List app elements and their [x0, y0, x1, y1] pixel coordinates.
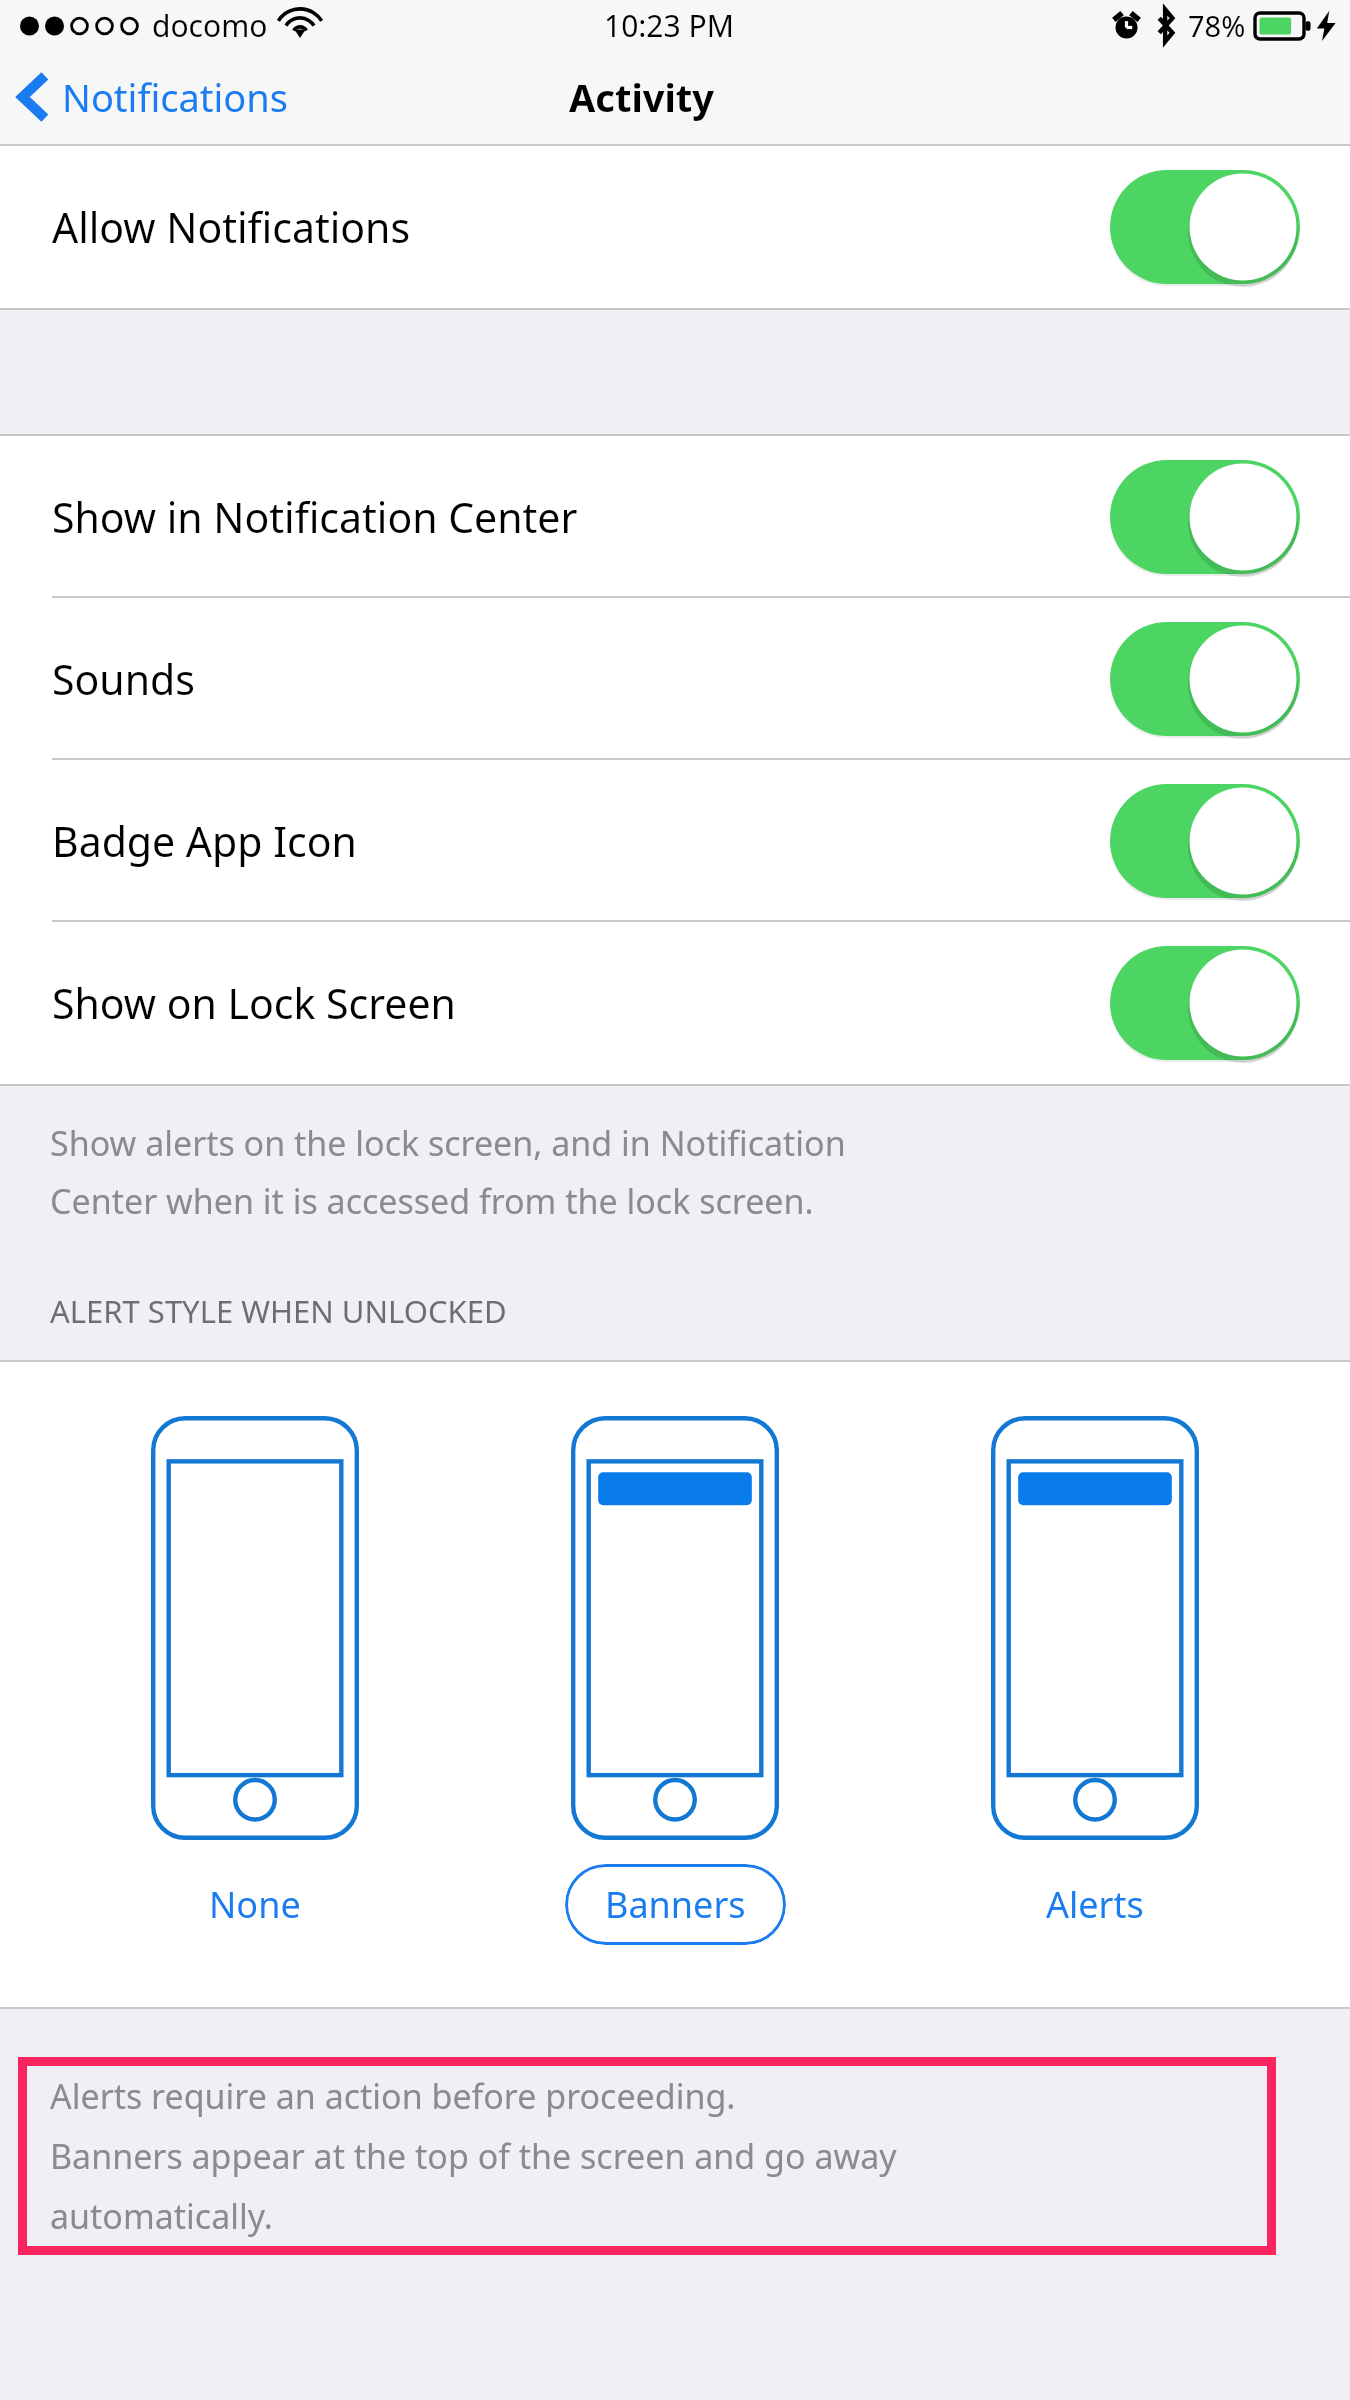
other: Allow Notifications, on	[1110, 170, 1300, 284]
staticText: Show on Lock Screen	[52, 975, 456, 1031]
staticText: Allow Notifications	[52, 199, 411, 255]
button[interactable]: Show on Lock Screen	[0, 922, 1350, 1084]
staticText: Badge App Icon	[52, 813, 357, 869]
staticText: ALERT STYLE WHEN UNLOCKED	[50, 1290, 507, 1332]
staticText: Activity	[569, 71, 715, 123]
button[interactable]: Sounds	[0, 598, 1350, 760]
staticText: Sounds	[52, 651, 195, 707]
staticText: Show alerts on the lock screen, and in N…	[50, 1120, 846, 1166]
other: Show in Notification Center, on	[1110, 460, 1300, 574]
staticText: 78%	[1188, 6, 1246, 45]
button[interactable]: Banners	[510, 1362, 840, 1945]
staticText: Alerts	[1046, 1880, 1144, 1929]
staticText: Banners	[605, 1880, 746, 1929]
staticText: Alerts require an action before proceedi…	[50, 2073, 736, 2119]
staticText: Banners appear at the top of the screen …	[50, 2133, 897, 2179]
other: Sounds, on	[1110, 622, 1300, 736]
button[interactable]: Show in Notification Center	[0, 436, 1350, 598]
button[interactable]: Notifications	[0, 63, 307, 131]
button[interactable]: Allow Notifications	[0, 146, 1350, 308]
staticText: Show in Notification Center	[52, 489, 578, 545]
staticText: docomo	[152, 5, 268, 46]
staticText: 10:23 PM	[604, 5, 734, 46]
staticText: Center when it is accessed from the lock…	[50, 1178, 814, 1224]
other: Show on Lock Screen, on	[1110, 946, 1300, 1060]
button[interactable]: Badge App Icon	[0, 760, 1350, 922]
staticText: automatically.	[50, 2193, 273, 2239]
other: Badge App Icon, on	[1110, 784, 1300, 898]
staticText: None	[209, 1880, 301, 1929]
staticText: Notifications	[62, 71, 289, 123]
button[interactable]: None	[90, 1362, 420, 1945]
button[interactable]: Alerts	[930, 1362, 1260, 1945]
